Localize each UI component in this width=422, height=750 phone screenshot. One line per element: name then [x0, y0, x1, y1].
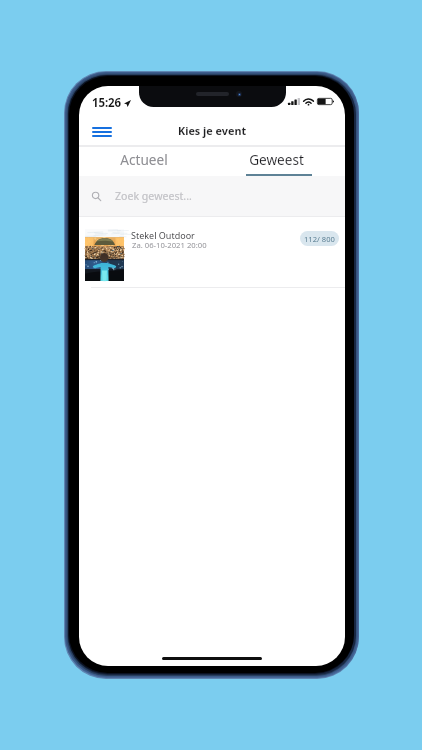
staticText: Stekel Outdoor [131, 229, 195, 241]
button[interactable]: Menu [89, 119, 115, 145]
button[interactable]: Stekel Outdoor [79, 217, 345, 288]
staticText: 15:26 [92, 95, 122, 111]
staticText: Kies je event [178, 123, 247, 138]
staticText: Za. 06-10-2021 20:00 [132, 240, 207, 250]
button[interactable]: Actueel [79, 147, 212, 176]
staticText: Zoek geweest... [115, 189, 192, 203]
staticText: Actueel [120, 150, 168, 169]
staticText: Geweest [249, 150, 304, 169]
button[interactable]: Geweest [212, 147, 345, 176]
staticText: 112/ 800 [304, 234, 335, 244]
button[interactable]: Zoek geweest... [79, 176, 345, 216]
